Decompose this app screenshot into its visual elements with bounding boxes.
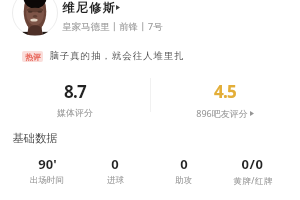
button[interactable]: 90' xyxy=(13,155,81,186)
staticText: 8.7 xyxy=(64,80,86,103)
staticText: 进球 xyxy=(107,175,124,186)
staticText: 脑子真的抽，就会往人堆里扎 xyxy=(49,50,185,62)
staticText: 0 xyxy=(180,155,188,173)
button[interactable]: 4.5 xyxy=(150,80,300,119)
button[interactable]: 维尼修斯 xyxy=(62,0,120,15)
button[interactable]: 8.7 xyxy=(0,80,150,118)
button[interactable]: 热评 xyxy=(22,50,185,62)
staticText: 90' xyxy=(38,155,57,173)
staticText: 维尼修斯 xyxy=(62,0,116,15)
staticText: 热评 xyxy=(25,52,41,62)
staticText: 0/0 xyxy=(241,155,264,173)
staticText: 0 xyxy=(111,155,119,173)
staticText: 出场时间 xyxy=(30,175,64,186)
button[interactable]: 皇家马德里丨前锋丨7号 xyxy=(62,20,163,33)
staticText: 4.5 xyxy=(214,80,236,103)
staticText: 媒体评分 xyxy=(57,107,93,118)
button[interactable]: Player photo xyxy=(12,0,58,36)
button[interactable]: 0 xyxy=(149,155,218,186)
staticText: 助攻 xyxy=(175,175,192,186)
staticText: 黄牌/红牌 xyxy=(233,175,273,187)
button[interactable]: 0/0 xyxy=(218,155,287,187)
button[interactable]: 0 xyxy=(81,155,149,186)
staticText: 基础数据 xyxy=(12,131,58,145)
staticText: 896吧友评分 xyxy=(196,107,248,119)
staticText: 皇家马德里丨前锋丨7号 xyxy=(62,20,163,33)
